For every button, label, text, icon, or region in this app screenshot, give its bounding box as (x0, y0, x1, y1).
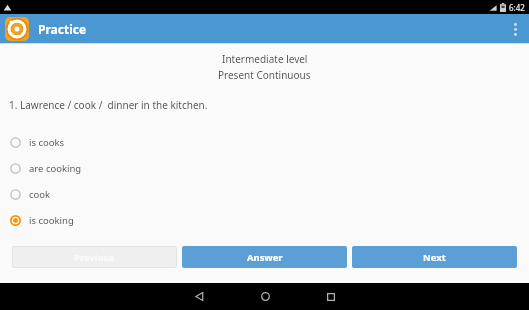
staticText: Answer (247, 251, 283, 264)
staticText: cook (29, 188, 51, 201)
button[interactable]: are cooking (0, 155, 529, 181)
staticText: Previous (74, 251, 115, 264)
staticText: Next (423, 251, 446, 264)
button[interactable]: Practice app icon (5, 17, 29, 41)
staticText: is cooking (29, 214, 74, 227)
staticText: Present Continuous (218, 68, 311, 82)
button[interactable]: Home (232, 283, 298, 310)
button[interactable]: cook (0, 181, 529, 207)
staticText: 6:42 (509, 2, 525, 13)
staticText: are cooking (29, 162, 82, 175)
button[interactable]: Back (166, 283, 232, 310)
button[interactable]: Next (352, 246, 517, 268)
button[interactable]: Answer (182, 246, 347, 268)
button[interactable]: is cooking (0, 207, 529, 233)
staticText: Practice (38, 21, 87, 37)
button[interactable]: is cooks (0, 129, 529, 155)
staticText: 1. Lawrence / cook / dinner in the kitch… (9, 98, 208, 112)
button[interactable]: Previous (12, 246, 177, 268)
staticText: Intermediate level (222, 52, 308, 66)
staticText: is cooks (29, 136, 65, 149)
button[interactable]: More options (501, 15, 529, 43)
button[interactable]: Recent apps (298, 283, 364, 310)
